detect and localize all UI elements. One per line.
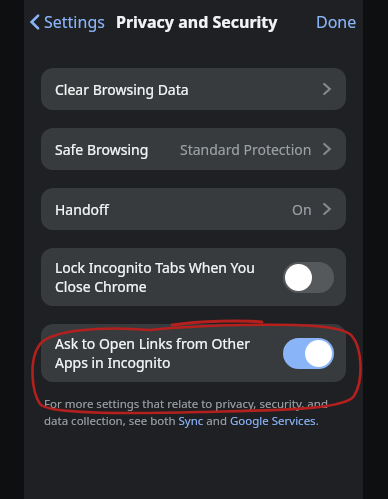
button[interactable]: Safe Browsing [41,128,346,170]
button[interactable]: Clear Browsing Data [41,68,346,110]
staticText: Done [316,11,357,33]
button[interactable]: Handoff [41,188,346,230]
staticText: Privacy and Security [116,11,278,33]
button[interactable]: Ask to Open Links from Other Apps in Inc… [41,324,346,382]
button[interactable]: Settings [24,7,111,37]
button[interactable]: Toggle on [283,338,334,369]
staticText: Lock Incognito Tabs When You Close Chrom… [55,258,277,296]
staticText: Settings [44,11,105,33]
button[interactable]: Done [310,7,363,37]
staticText: Standard Protection [180,140,312,159]
staticText: For more settings that relate to privacy… [44,396,328,429]
staticText: Ask to Open Links from Other Apps in Inc… [55,334,277,372]
button[interactable]: Toggle off [283,262,334,293]
staticText: Clear Browsing Data [55,80,189,99]
button[interactable]: Lock Incognito Tabs When You Close Chrom… [41,248,346,306]
staticText: Handoff [55,200,109,219]
staticText: On [292,200,312,219]
staticText: Safe Browsing [55,140,149,159]
